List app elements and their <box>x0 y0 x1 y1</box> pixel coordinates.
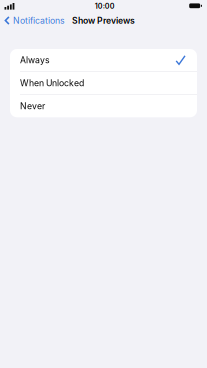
button[interactable]: Never <box>10 95 197 117</box>
button[interactable]: Always <box>10 49 197 71</box>
staticText: Always <box>20 55 50 65</box>
staticText: Never <box>20 101 45 111</box>
staticText: Show Previews <box>72 15 135 26</box>
button[interactable]: Notifications <box>4 15 65 26</box>
staticText: When Unlocked <box>20 78 84 88</box>
staticText: Notifications <box>13 15 65 26</box>
staticText: 10:00 <box>95 2 115 10</box>
button[interactable]: When Unlocked <box>10 72 197 94</box>
